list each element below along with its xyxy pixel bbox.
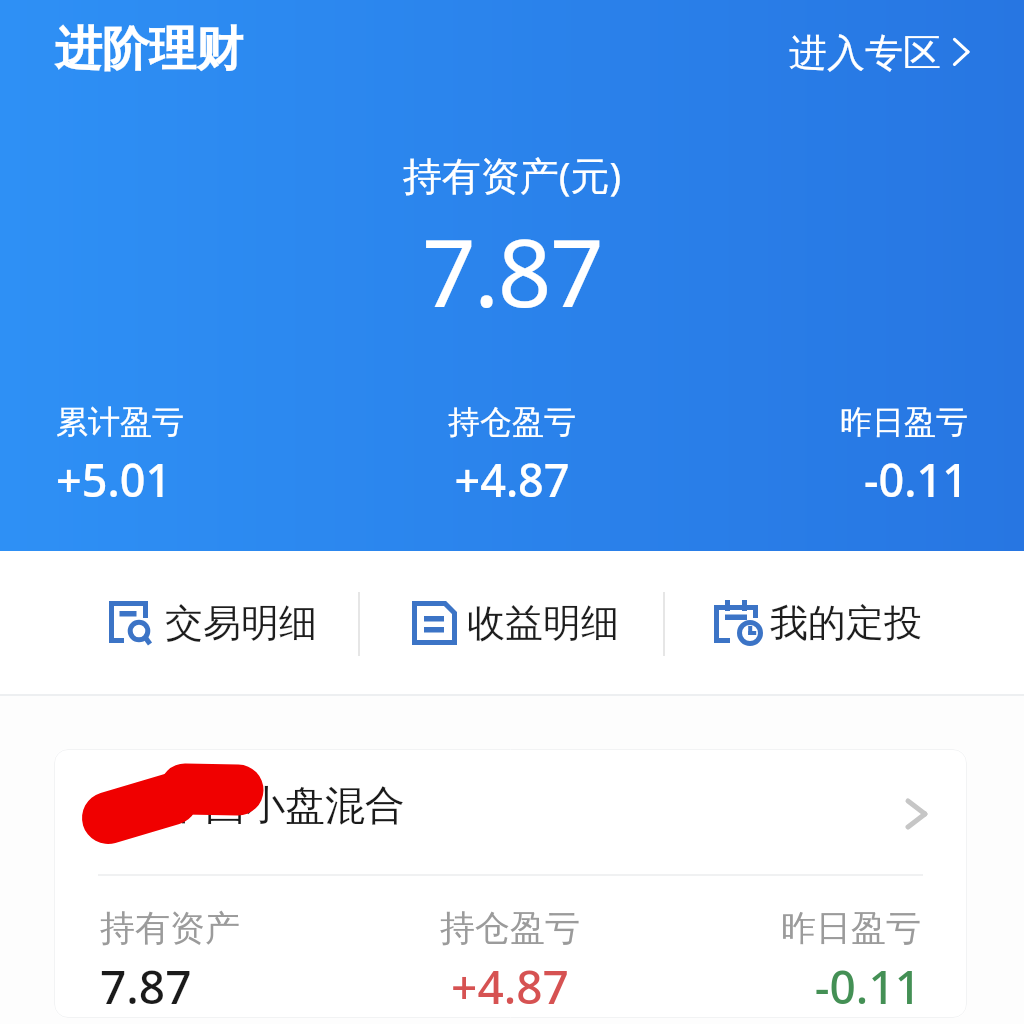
- staticText: 持有资产: [100, 906, 373, 950]
- staticText: 我的定投: [770, 599, 922, 647]
- staticText: 持仓盈亏: [360, 402, 664, 442]
- button[interactable]: 进入专区: [769, 9, 993, 97]
- staticText: -0.11: [664, 449, 968, 510]
- staticText: -0.11: [647, 955, 921, 1018]
- staticText: 累计盈亏: [56, 402, 360, 442]
- staticText: 交易明细: [165, 599, 317, 647]
- staticText: 进阶理财: [55, 20, 243, 79]
- staticText: +4.87: [373, 955, 647, 1018]
- staticText: 收益明细: [467, 599, 619, 647]
- staticText: 7.87: [100, 955, 373, 1018]
- staticText: 昨日盈亏: [647, 906, 921, 950]
- staticText: +5.01: [56, 449, 360, 510]
- staticText: 7.87: [0, 207, 1024, 335]
- staticText: 持有资产(元): [0, 148, 1024, 201]
- staticText: 进入专区: [789, 29, 941, 77]
- button[interactable]: 交易明细: [109, 551, 317, 695]
- staticText: 持仓盈亏: [373, 906, 647, 950]
- staticText: 中国小盘混合: [165, 780, 405, 830]
- button[interactable]: 我的定投: [714, 551, 922, 695]
- button[interactable]: 中国小盘混合: [54, 749, 967, 1018]
- staticText: +4.87: [360, 449, 664, 510]
- other: 查看详情: [903, 795, 937, 829]
- button[interactable]: 收益明细: [411, 551, 619, 695]
- staticText: 昨日盈亏: [664, 402, 968, 442]
